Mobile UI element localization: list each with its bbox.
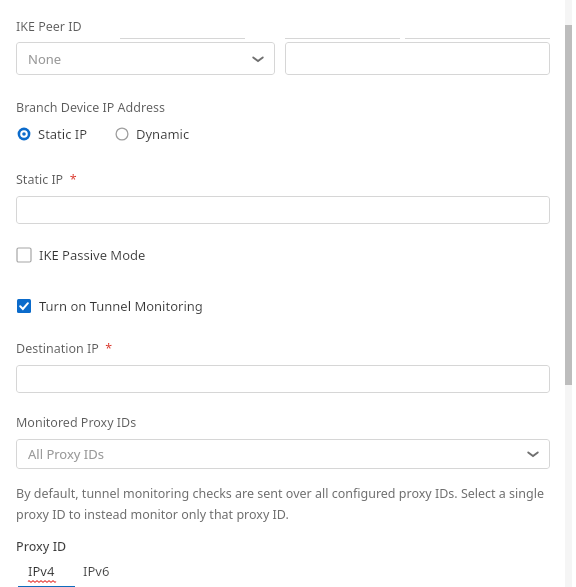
staticText: IPv6 — [83, 562, 110, 580]
staticText: All Proxy IDs — [28, 445, 104, 463]
button[interactable]: Destination IP — [16, 365, 550, 393]
button[interactable]: IPv6 — [83, 562, 110, 580]
button[interactable]: IKE Peer ID value — [285, 42, 550, 75]
staticText: IKE Passive Mode — [39, 246, 146, 264]
staticText: None — [28, 50, 62, 68]
button[interactable]: IPv4 — [28, 562, 55, 583]
staticText: Static IP — [38, 125, 88, 143]
button[interactable]: IKE Passive Mode — [16, 244, 147, 266]
button[interactable]: Static IP — [16, 123, 89, 145]
staticText: Monitored Proxy IDs — [16, 414, 137, 431]
button[interactable]: IKE Peer ID type — [16, 42, 275, 75]
staticText: Proxy ID — [16, 538, 67, 555]
button[interactable]: Turn on Tunnel Monitoring — [16, 295, 204, 317]
staticText: Destination IP * — [16, 340, 113, 357]
button[interactable]: Static IP — [16, 196, 550, 224]
button[interactable]: Monitored Proxy IDs — [16, 439, 550, 469]
staticText: IKE Peer ID — [16, 18, 82, 35]
staticText: Turn on Tunnel Monitoring — [39, 297, 203, 315]
staticText: IPv4 — [28, 562, 55, 580]
staticText: Dynamic — [136, 125, 190, 143]
staticText: Branch Device IP Address — [16, 99, 165, 116]
button[interactable]: Dynamic — [114, 123, 191, 145]
staticText: By default, tunnel monitoring checks are… — [16, 485, 554, 522]
staticText: Static IP * — [16, 171, 77, 188]
